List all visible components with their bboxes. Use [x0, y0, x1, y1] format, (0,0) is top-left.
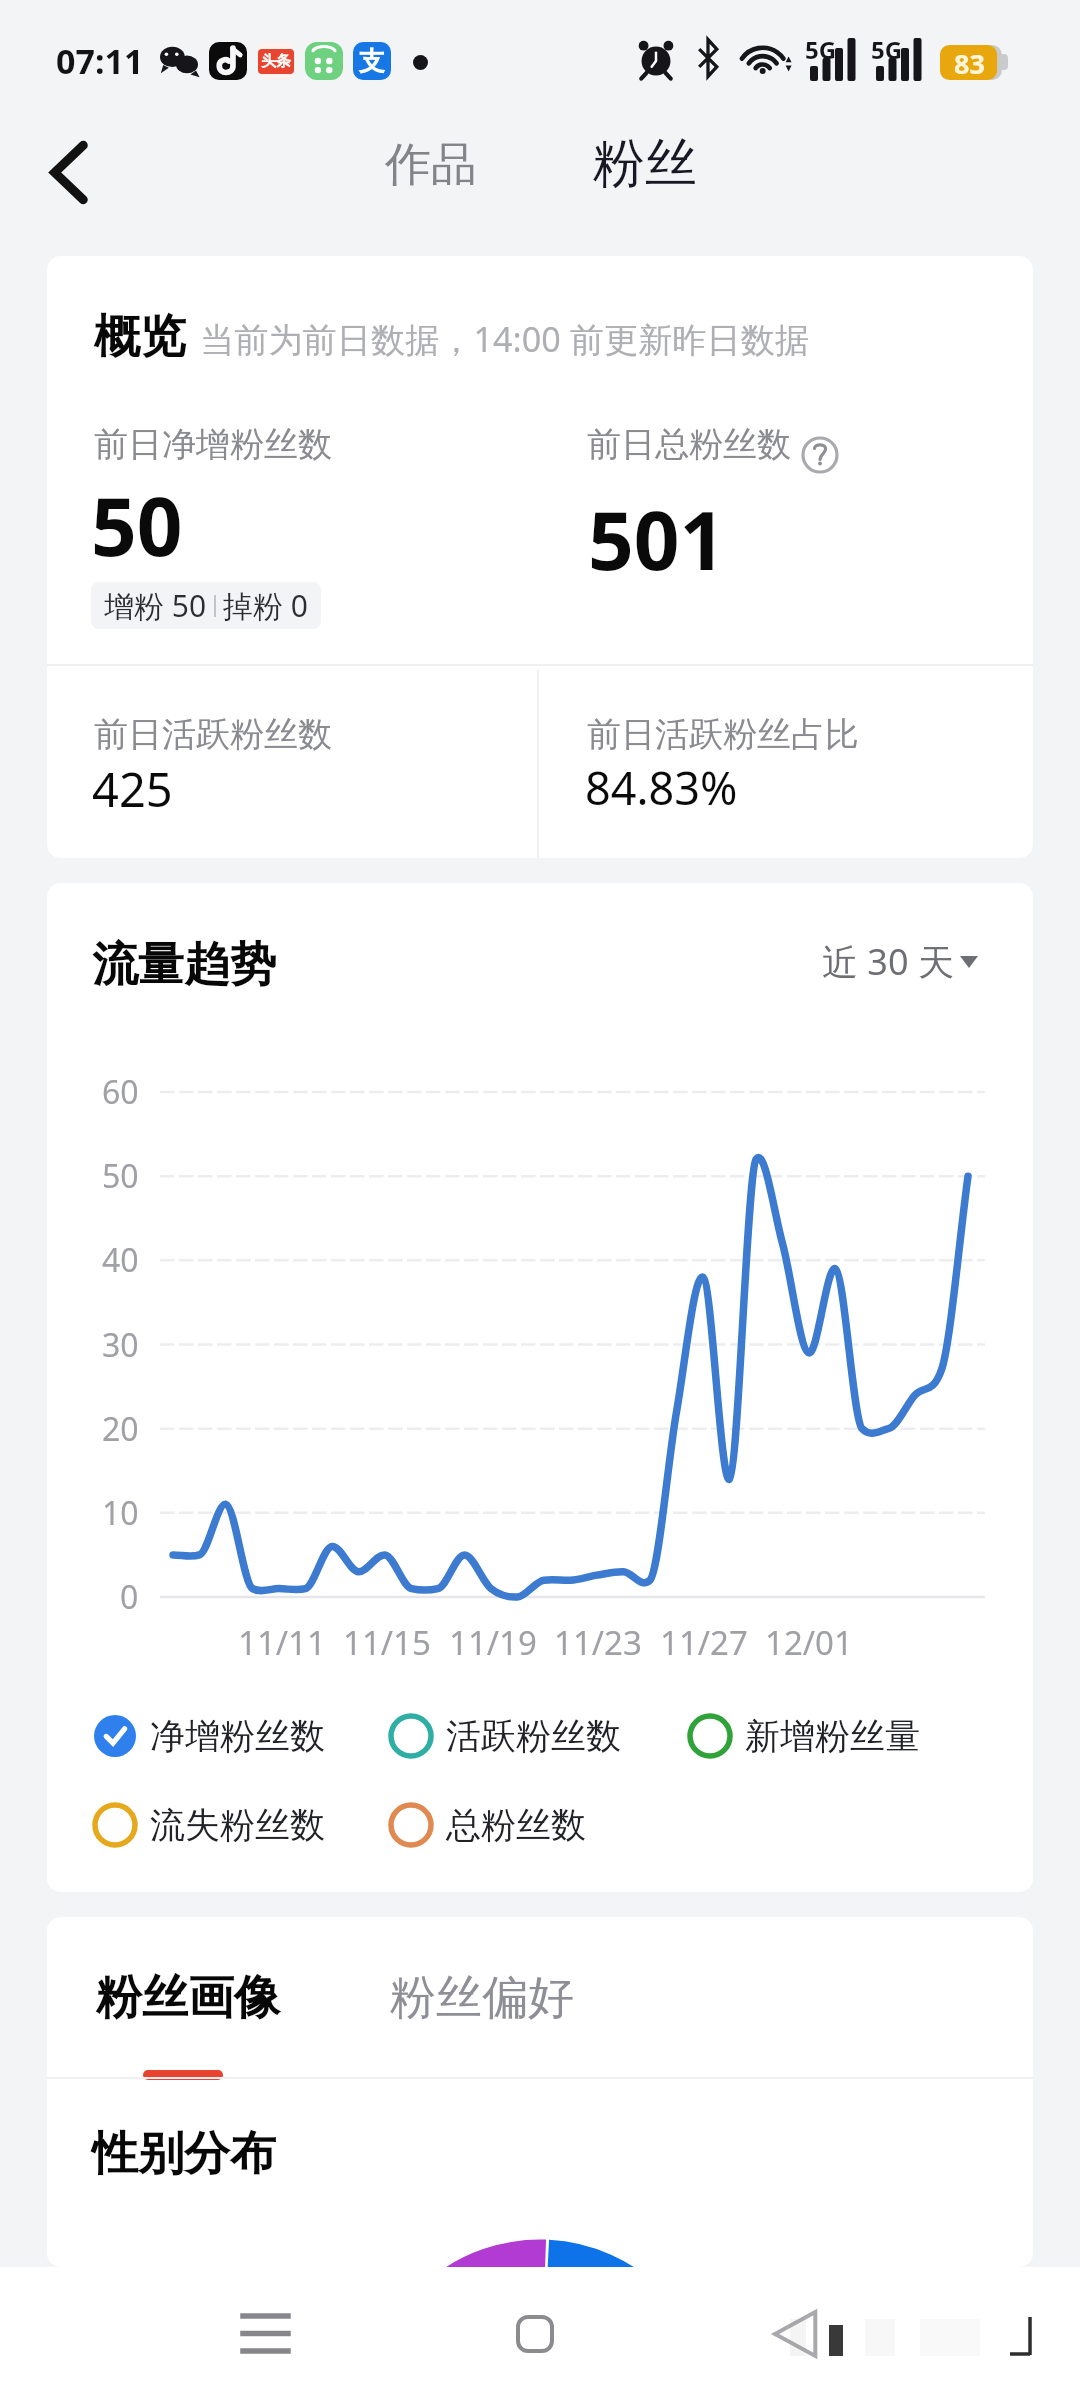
staticText: 11/27: [660, 1620, 748, 1665]
button[interactable]: 粉丝偏好: [386, 1965, 578, 2031]
staticText: 30: [102, 1323, 139, 1367]
staticText: 当前为前日数据，14:00 前更新昨日数据: [200, 315, 810, 362]
button[interactable]: 总粉丝数: [389, 1803, 586, 1847]
staticText: 20: [102, 1407, 139, 1451]
staticText: 12/01: [765, 1620, 853, 1665]
button[interactable]: Home: [475, 2267, 595, 2400]
staticText: 50: [102, 1154, 139, 1198]
button[interactable]: 净增粉丝数: [93, 1714, 325, 1758]
staticText: 11/11: [238, 1620, 326, 1665]
staticText: 前日净增粉丝数: [94, 423, 332, 466]
staticText: 掉粉 0: [223, 585, 308, 626]
staticText: 5G: [805, 33, 837, 66]
staticText: 5G: [871, 33, 903, 66]
button[interactable]: 粉丝画像: [92, 1965, 284, 2031]
button[interactable]: 增粉 50: [104, 585, 308, 626]
staticText: 前日活跃粉丝数: [94, 713, 332, 756]
staticText: 50: [91, 470, 183, 579]
staticText: 84.83%: [585, 757, 738, 818]
button[interactable]: 流失粉丝数: [93, 1803, 325, 1847]
staticText: 流失粉丝数: [150, 1803, 325, 1847]
button[interactable]: Recents: [205, 2267, 325, 2400]
staticText: 粉丝: [593, 131, 697, 197]
button[interactable]: 活跃粉丝数: [389, 1714, 621, 1758]
staticText: 概览: [94, 308, 186, 366]
staticText: 总粉丝数: [446, 1803, 586, 1847]
staticText: 粉丝画像: [96, 1969, 280, 2027]
staticText: 60: [102, 1070, 139, 1114]
staticText: 近 30 天: [822, 937, 954, 986]
button[interactable]: 新增粉丝量: [688, 1714, 920, 1758]
staticText: 11/19: [449, 1620, 537, 1665]
staticText: 作品: [385, 136, 477, 194]
staticText: 粉丝偏好: [390, 1969, 574, 2027]
staticText: 501: [588, 484, 726, 593]
staticText: 425: [92, 757, 173, 821]
staticText: 11/23: [554, 1620, 642, 1665]
staticText: 支: [359, 45, 385, 78]
staticText: 新增粉丝量: [745, 1714, 920, 1758]
staticText: 流量趋势: [92, 936, 276, 994]
button[interactable]: Back: [31, 134, 107, 210]
staticText: 10: [102, 1491, 139, 1535]
staticText: 活跃粉丝数: [446, 1714, 621, 1758]
staticText: 07:11: [56, 38, 144, 84]
staticText: 11/15: [343, 1620, 431, 1665]
staticText: 增粉 50: [104, 585, 207, 626]
staticText: 0: [120, 1575, 139, 1619]
button[interactable]: Back: [736, 2267, 856, 2400]
button[interactable]: Help: [801, 436, 839, 474]
staticText: 前日总粉丝数: [587, 423, 791, 466]
staticText: 83: [954, 45, 985, 80]
button[interactable]: 粉丝: [587, 119, 703, 209]
button[interactable]: 作品: [379, 124, 483, 206]
staticText: 40: [102, 1238, 139, 1282]
staticText: 前日活跃粉丝占比: [587, 713, 859, 756]
staticText: 头条: [261, 52, 291, 71]
button[interactable]: 近 30 天: [816, 931, 984, 992]
staticText: 性别分布: [92, 2125, 276, 2183]
staticText: 净增粉丝数: [150, 1714, 325, 1758]
